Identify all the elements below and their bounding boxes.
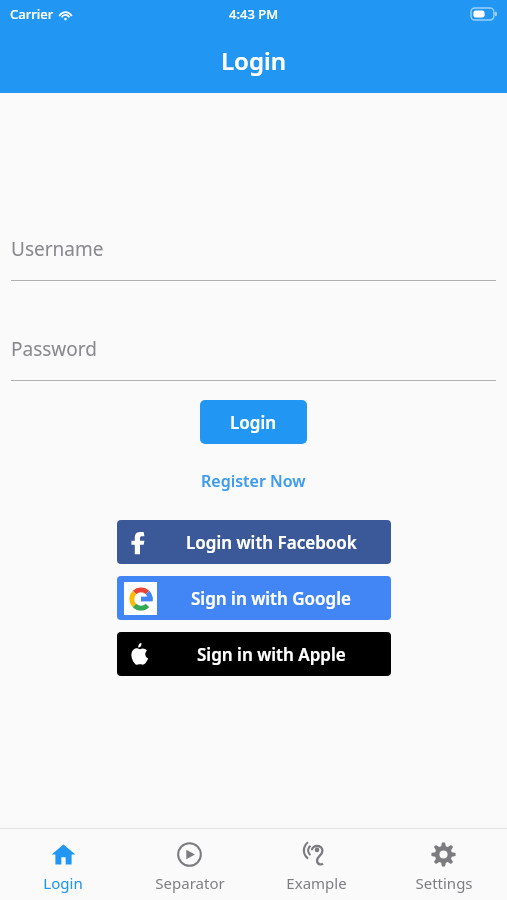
staticText: Login xyxy=(43,873,83,893)
button[interactable]: Login with Facebook xyxy=(117,520,391,564)
staticText: 4:43 PM xyxy=(229,5,279,23)
staticText: Sign in with Google xyxy=(191,587,351,610)
staticText: Login xyxy=(230,411,277,434)
button[interactable]: Example xyxy=(253,829,380,900)
staticText: Password xyxy=(11,336,97,362)
staticText: Login with Facebook xyxy=(186,531,357,554)
staticText: Settings xyxy=(415,873,473,893)
staticText: Carrier xyxy=(10,5,54,23)
staticText: Example xyxy=(286,873,347,893)
staticText: Username xyxy=(11,236,104,262)
staticText: Register Now xyxy=(201,470,306,492)
button[interactable]: Login xyxy=(200,400,307,444)
button[interactable]: Sign in with Google xyxy=(117,576,391,620)
button[interactable]: Register Now xyxy=(193,467,314,495)
staticText: Separator xyxy=(155,873,225,893)
button[interactable]: Separator xyxy=(126,829,253,900)
button[interactable]: Login xyxy=(0,829,126,900)
staticText: Sign in with Apple xyxy=(197,643,346,666)
button[interactable]: Sign in with Apple xyxy=(117,632,391,676)
staticText: Login xyxy=(221,44,287,77)
button[interactable]: Settings xyxy=(380,829,507,900)
